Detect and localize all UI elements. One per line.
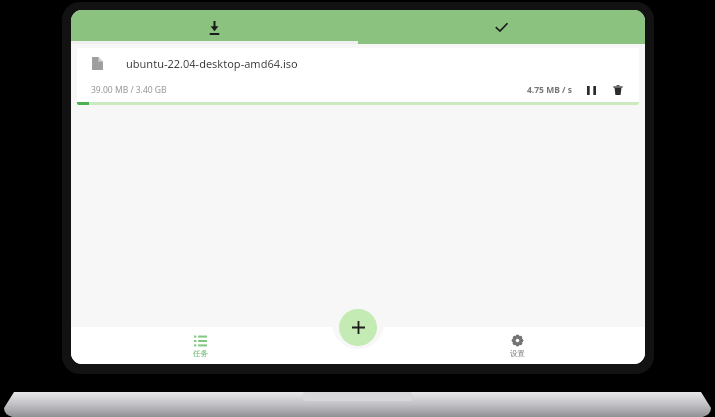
button[interactable]: 设置	[491, 332, 543, 360]
button[interactable]: Downloading	[71, 10, 358, 44]
staticText: 任务	[193, 349, 208, 358]
button[interactable]: Add task	[339, 309, 377, 346]
staticText: 4.75 MB / s	[527, 84, 573, 96]
staticText: ubuntu-22.04-desktop-amd64.iso	[126, 56, 298, 71]
staticText: 39.00 MB / 3.40 GB	[91, 84, 167, 96]
button[interactable]: Completed	[358, 10, 645, 44]
button[interactable]: Delete	[609, 81, 627, 99]
button[interactable]: Pause	[582, 81, 600, 99]
button[interactable]: 任务	[174, 332, 226, 360]
staticText: 设置	[510, 349, 525, 358]
button[interactable]: ubuntu-22.04-desktop-amd64.iso	[77, 48, 639, 105]
